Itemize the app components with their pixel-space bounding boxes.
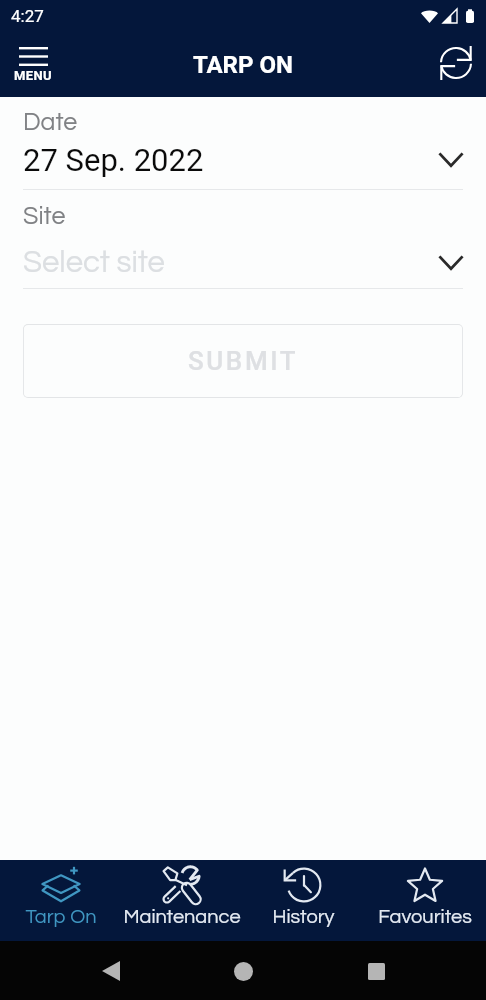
staticText: TARP ON [193, 51, 293, 79]
button[interactable]: Maintenance [121, 860, 242, 941]
button[interactable]: Tarp On [0, 860, 121, 941]
staticText: MENU [14, 68, 53, 83]
button[interactable]: Favourites [364, 860, 486, 941]
button[interactable]: Back [89, 949, 133, 993]
button[interactable]: Menu [8, 43, 59, 87]
staticText: 4:27 [11, 6, 44, 26]
button[interactable]: Recents [354, 949, 398, 993]
staticText: Date [23, 109, 78, 135]
staticText: 27 Sep. 2022 [23, 142, 439, 178]
button[interactable]: History [242, 860, 364, 941]
staticText: SUBMIT [188, 346, 299, 376]
button[interactable]: Refresh [434, 41, 478, 85]
button[interactable]: Select site [23, 247, 463, 279]
button[interactable]: 27 Sep. 2022 [23, 142, 463, 178]
staticText: Favourites [378, 907, 472, 928]
staticText: History [272, 907, 335, 928]
button[interactable]: Home [221, 949, 265, 993]
staticText: Tarp On [25, 907, 97, 928]
staticText: Select site [23, 247, 439, 279]
staticText: Site [23, 203, 66, 229]
button[interactable]: SUBMIT [23, 324, 463, 398]
staticText: Maintenance [123, 907, 241, 928]
